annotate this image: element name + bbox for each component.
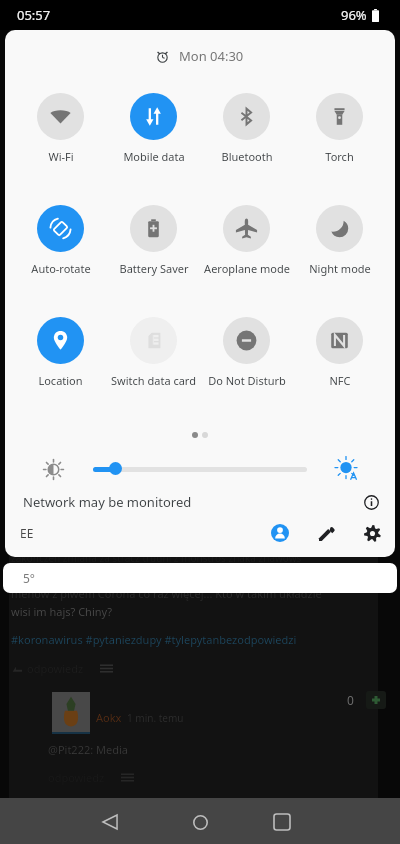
- button[interactable]: Auto-rotate: [14, 205, 107, 276]
- staticText: 05:57: [17, 6, 51, 24]
- button[interactable]: Recent apps: [266, 806, 298, 838]
- staticText: Aeroplane mode: [204, 261, 290, 276]
- button[interactable]: Do Not Disturb: [200, 317, 293, 388]
- button[interactable]: Torch: [293, 93, 386, 164]
- staticText: 0: [347, 692, 354, 708]
- staticText: Do Not Disturb: [208, 373, 286, 388]
- button[interactable]: User: [268, 521, 292, 545]
- staticText: Night mode: [309, 261, 371, 276]
- staticText: Wi-Fi: [48, 149, 74, 164]
- button[interactable]: Auto brightness: [333, 456, 359, 482]
- button[interactable]: Mobile data: [107, 93, 200, 164]
- staticText: Auto-rotate: [31, 261, 91, 276]
- button[interactable]: 5°: [3, 563, 397, 593]
- button[interactable]: Switch data card: [107, 317, 200, 388]
- staticText: Switch data card: [111, 373, 196, 388]
- staticText: Network may be monitored: [23, 493, 192, 511]
- staticText: Aokx: [96, 710, 122, 725]
- button[interactable]: Bluetooth: [200, 93, 293, 164]
- staticText: Location: [38, 373, 83, 388]
- staticText: NFC: [329, 373, 351, 388]
- staticText: Bluetooth: [221, 149, 273, 164]
- button[interactable]: Home: [184, 806, 216, 838]
- staticText: menów z piwem Corona co raz więcej... Kt…: [11, 586, 322, 601]
- staticText: wisi im hajs? Chiny?: [11, 604, 113, 619]
- staticText: Torch: [325, 149, 354, 164]
- button[interactable]: Settings: [360, 521, 384, 545]
- button[interactable]: Edit: [314, 521, 338, 545]
- staticText: Mon 04:30: [179, 47, 244, 65]
- staticText: Battery Saver: [119, 261, 189, 276]
- button[interactable]: Battery Saver: [107, 205, 200, 276]
- button[interactable]: Night mode: [293, 205, 386, 276]
- button[interactable]: Information: [359, 490, 383, 514]
- staticText: EE: [20, 525, 34, 541]
- button[interactable]: Aeroplane mode: [200, 205, 293, 276]
- button[interactable]: NFC: [293, 317, 386, 388]
- staticText: @Pit222: Media: [48, 742, 128, 757]
- button[interactable]: Location: [14, 317, 107, 388]
- staticText: 5°: [23, 570, 36, 586]
- staticText: Mobile data: [123, 149, 185, 164]
- staticText: 1 min. temu: [127, 711, 184, 725]
- button[interactable]: Back: [94, 806, 126, 838]
- button[interactable]: Brightness: [109, 462, 122, 475]
- staticText: 96%: [341, 6, 367, 24]
- staticText: zakoñczeñ zmiana za stracz trudni z mons…: [11, 551, 302, 565]
- staticText: #koronawirus #pytaniezdupy #tylepytanbez…: [11, 632, 297, 647]
- button[interactable]: Wi-Fi: [14, 93, 107, 164]
